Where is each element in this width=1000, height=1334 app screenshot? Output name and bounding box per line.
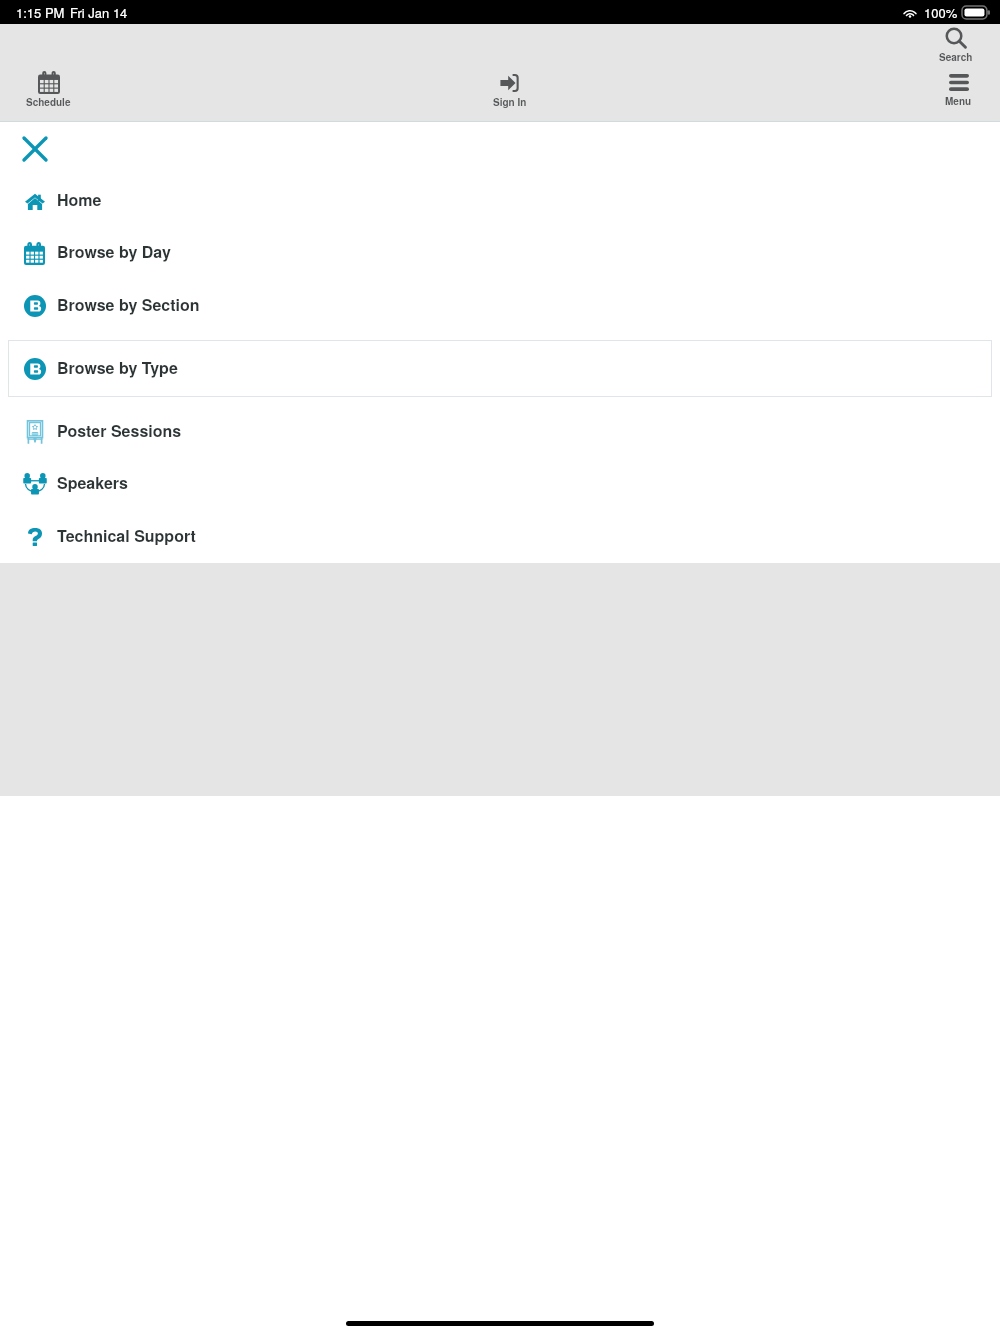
button[interactable]: Poster Sessions bbox=[0, 406, 1000, 458]
staticText: Fri Jan 14 bbox=[70, 3, 128, 22]
staticText: 1:15 PM bbox=[16, 3, 65, 22]
button[interactable]: Schedule bbox=[26, 71, 71, 109]
staticText: Browse by Day bbox=[57, 240, 171, 263]
button[interactable]: Technical Support bbox=[0, 511, 1000, 563]
button[interactable]: Home bbox=[0, 175, 1000, 227]
staticText: Menu bbox=[945, 94, 972, 108]
button[interactable]: Browse by Section bbox=[0, 280, 1000, 332]
staticText: Speakers bbox=[57, 471, 128, 494]
staticText: Browse by Type bbox=[57, 356, 178, 379]
staticText: 100% bbox=[924, 3, 958, 22]
staticText: Poster Sessions bbox=[57, 419, 182, 442]
staticText: Browse by Section bbox=[57, 293, 200, 316]
staticText: Home bbox=[57, 188, 102, 211]
staticText: Sign In bbox=[493, 95, 527, 109]
staticText: Technical Support bbox=[57, 524, 196, 547]
button[interactable]: Menu bbox=[945, 74, 972, 108]
button[interactable]: Browse by Type bbox=[8, 340, 992, 397]
button[interactable]: Close bbox=[14, 128, 55, 169]
staticText: Search bbox=[939, 50, 973, 64]
button[interactable]: Sign In bbox=[493, 74, 527, 109]
staticText: Schedule bbox=[26, 95, 71, 109]
button[interactable]: Search bbox=[939, 28, 973, 64]
button[interactable]: Browse by Day bbox=[0, 227, 1000, 279]
button[interactable]: Speakers bbox=[0, 458, 1000, 510]
